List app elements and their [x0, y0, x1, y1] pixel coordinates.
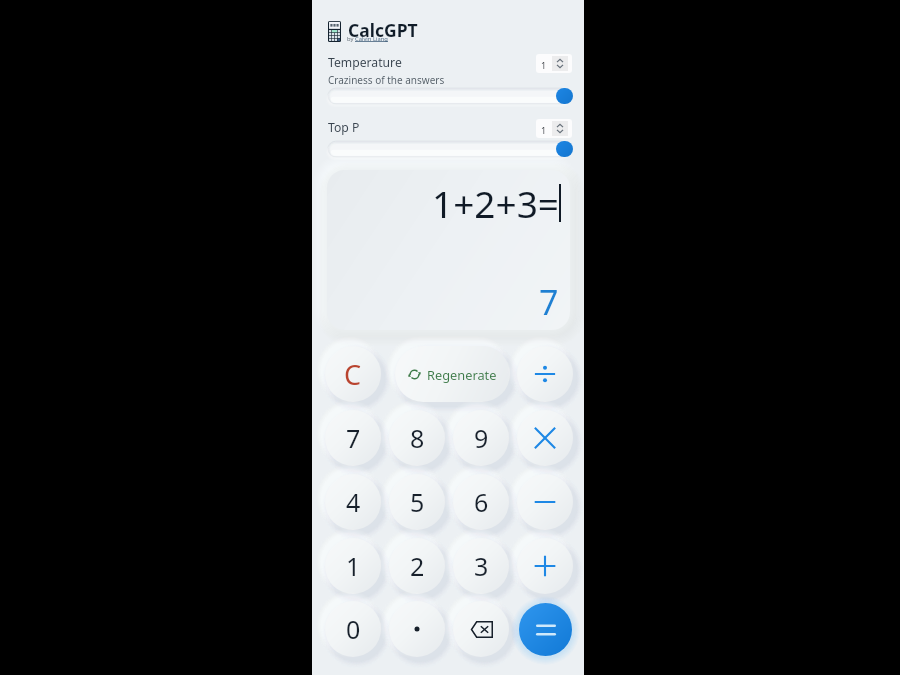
button[interactable]: Backspace: [453, 601, 509, 657]
button[interactable]: 7: [325, 410, 381, 466]
staticText: by: [347, 35, 355, 43]
staticText: 9: [474, 421, 489, 455]
staticText: 3: [474, 549, 489, 583]
staticText: Craziness of the answers: [328, 73, 445, 87]
button[interactable]: 1+2+3=: [327, 170, 570, 330]
button[interactable]: Regenerate: [395, 346, 510, 402]
button[interactable]: Equals: [519, 603, 572, 656]
button[interactable]: Multiply: [517, 410, 573, 466]
staticText: 7: [346, 421, 361, 455]
staticText: Regenerate: [427, 366, 497, 383]
staticText: 0: [346, 612, 361, 646]
button[interactable]: Value stepper: [536, 54, 572, 73]
staticText: 6: [474, 485, 489, 519]
button[interactable]: 8: [389, 410, 445, 466]
button[interactable]: Minus: [517, 474, 573, 530]
button[interactable]: Slider thumb: [328, 88, 569, 104]
button[interactable]: Divide: [517, 346, 573, 402]
button[interactable]: Slider thumb: [556, 141, 573, 157]
staticText: 1: [541, 124, 547, 136]
staticText: 8: [410, 421, 425, 455]
staticText: 5: [410, 485, 425, 519]
staticText: 4: [346, 485, 361, 519]
staticText: C: [344, 356, 362, 393]
button[interactable]: Slider thumb: [328, 141, 569, 157]
staticText: Top P: [328, 119, 360, 136]
staticText: 7: [539, 279, 559, 325]
staticText: 1+2+3=: [432, 178, 559, 228]
button[interactable]: 5: [389, 474, 445, 530]
button[interactable]: C: [325, 346, 381, 402]
button[interactable]: 6: [453, 474, 509, 530]
button[interactable]: Value stepper: [536, 119, 572, 138]
staticText: 1: [346, 549, 361, 583]
staticText: 1: [541, 59, 547, 71]
staticText: CalcGPT: [348, 18, 418, 42]
button[interactable]: 4: [325, 474, 381, 530]
button[interactable]: 0: [325, 601, 381, 657]
button[interactable]: 9: [453, 410, 509, 466]
staticText: Calvin Liang: [355, 35, 388, 43]
button[interactable]: Plus: [517, 538, 573, 594]
staticText: Temperature: [328, 54, 402, 71]
button[interactable]: Decimal point: [389, 601, 445, 657]
button[interactable]: 3: [453, 538, 509, 594]
button[interactable]: 1: [325, 538, 381, 594]
staticText: 2: [410, 549, 425, 583]
button[interactable]: Slider thumb: [556, 88, 573, 104]
button[interactable]: 2: [389, 538, 445, 594]
